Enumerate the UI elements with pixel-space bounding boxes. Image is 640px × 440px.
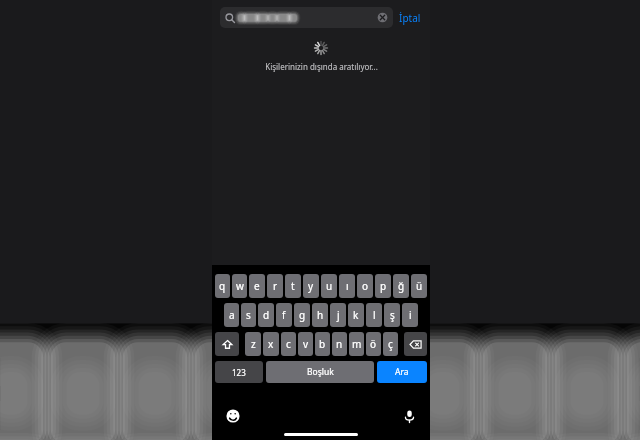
staticText: v [303,337,309,351]
staticText: r [273,279,278,293]
staticText: t [291,279,295,293]
button[interactable]: Emoji [223,406,243,426]
staticText: u [326,279,333,293]
staticText: j [337,308,340,322]
button[interactable]: i [402,303,418,327]
staticText: y [308,279,314,293]
staticText: d [263,308,270,322]
staticText: 123 [232,367,246,378]
staticText: ş [390,308,395,322]
staticText: h [317,308,324,322]
button[interactable]: d [258,303,274,327]
staticText: s [246,308,251,322]
button[interactable]: j [330,303,346,327]
button[interactable]: ı [339,274,355,298]
button[interactable]: m [349,332,364,356]
button[interactable]: q [215,274,230,298]
button[interactable]: p [375,274,391,298]
staticText: q [219,279,226,293]
staticText: ğ [398,279,405,293]
button[interactable]: l [366,303,382,327]
button[interactable]: c [281,332,296,356]
staticText: b [319,337,326,351]
button[interactable]: Shift [215,332,239,356]
staticText: f [282,308,286,322]
staticText: w [236,279,244,293]
button[interactable]: a [224,303,239,327]
staticText: Boşluk [307,366,334,378]
button[interactable]: ü [411,274,427,298]
staticText: l [373,308,376,322]
button[interactable]: o [357,274,373,298]
staticText: n [336,337,343,351]
button[interactable]: n [332,332,347,356]
button[interactable]: Ara [377,361,427,383]
button[interactable]: y [303,274,319,298]
button[interactable]: ö [366,332,381,356]
button[interactable]: r [267,274,283,298]
staticText: Ara [395,366,409,378]
staticText: ö [370,337,377,351]
button[interactable]: 123 [215,361,263,383]
staticText: i [409,308,412,322]
staticText: a [229,308,235,322]
button[interactable]: b [315,332,330,356]
button[interactable]: e [249,274,265,298]
button[interactable]: Sil [404,332,427,356]
staticText: ü [416,279,423,293]
button[interactable]: İptal [398,9,422,27]
button[interactable]: t [285,274,301,298]
button[interactable]: ç [383,332,398,356]
staticText: x [268,337,274,351]
staticText: o [362,279,369,293]
button[interactable]: s [241,303,256,327]
button[interactable]: w [232,274,247,298]
staticText: g [299,308,306,322]
staticText: m [352,337,362,351]
staticText: İptal [399,11,421,25]
staticText: k [353,308,359,322]
button[interactable]: x [263,332,279,356]
button[interactable]: z [245,332,261,356]
button[interactable]: Sesle arama [399,406,419,426]
staticText: p [380,279,387,293]
button[interactable]: h [312,303,328,327]
button[interactable]: k [348,303,364,327]
staticText: e [254,279,260,293]
button[interactable]: ğ [393,274,409,298]
button[interactable]: Temizle [220,7,393,28]
button[interactable]: v [298,332,313,356]
button[interactable]: u [321,274,337,298]
staticText: z [251,337,256,351]
button[interactable]: Temizle [377,12,388,23]
staticText: ı [346,279,349,293]
staticText: Kişilerinizin dışında aratılıyor... [265,61,378,72]
staticText: ç [388,337,393,351]
staticText: c [286,337,291,351]
button[interactable]: f [276,303,292,327]
button[interactable]: g [294,303,310,327]
button[interactable]: Boşluk [266,361,374,383]
button[interactable]: ş [384,303,400,327]
